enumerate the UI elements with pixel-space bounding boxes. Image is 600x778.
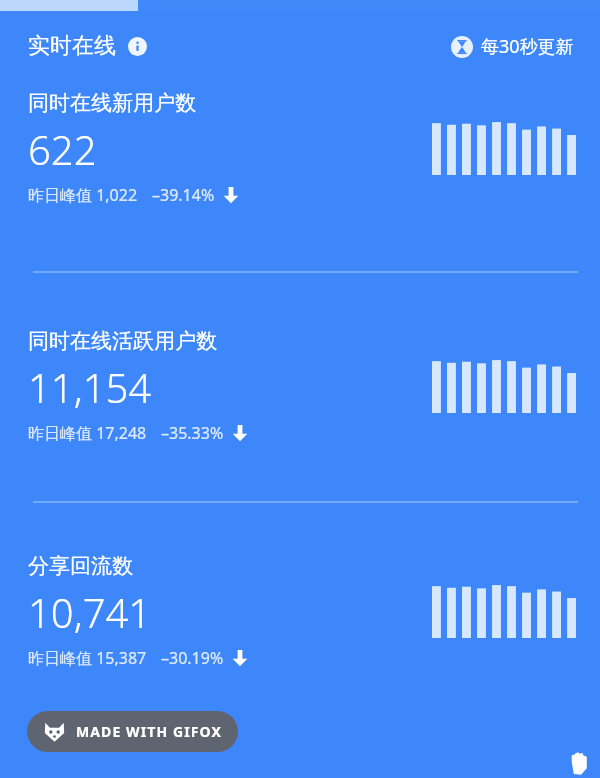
staticText: –35.33% [161, 422, 224, 444]
staticText: 昨日峰值 17,248 [28, 422, 147, 444]
staticText: –39.14% [152, 184, 215, 206]
staticText: –30.19% [161, 647, 224, 669]
staticText: 同时在线活跃用户数 [28, 328, 217, 354]
staticText: 昨日峰值 1,022 [28, 184, 138, 206]
staticText: 同时在线新用户数 [28, 90, 196, 116]
staticText: 10,741 [28, 585, 152, 639]
staticText: MADE WITH GIFOX [76, 722, 222, 741]
button[interactable]: 同时在线新用户数 [0, 90, 600, 206]
staticText: 每30秒更新 [481, 34, 574, 59]
staticText: 昨日峰值 15,387 [28, 647, 147, 669]
button[interactable]: 说明 [128, 37, 147, 56]
staticText: 622 [28, 122, 97, 176]
staticText: 实时在线 [28, 32, 116, 60]
button[interactable]: 刷新频率 [451, 34, 574, 59]
button[interactable]: MADE WITH GIFOX [27, 711, 238, 752]
staticText: 11,154 [28, 360, 152, 414]
button[interactable]: 同时在线活跃用户数 [0, 328, 600, 444]
button[interactable]: 分享回流数 [0, 553, 600, 669]
other: 刷新频率 [451, 36, 473, 58]
staticText: 分享回流数 [28, 553, 133, 579]
